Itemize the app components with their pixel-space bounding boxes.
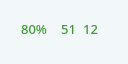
staticText: 80% [21,20,47,38]
staticText: 51 [61,20,76,38]
staticText: 12 [83,20,98,38]
